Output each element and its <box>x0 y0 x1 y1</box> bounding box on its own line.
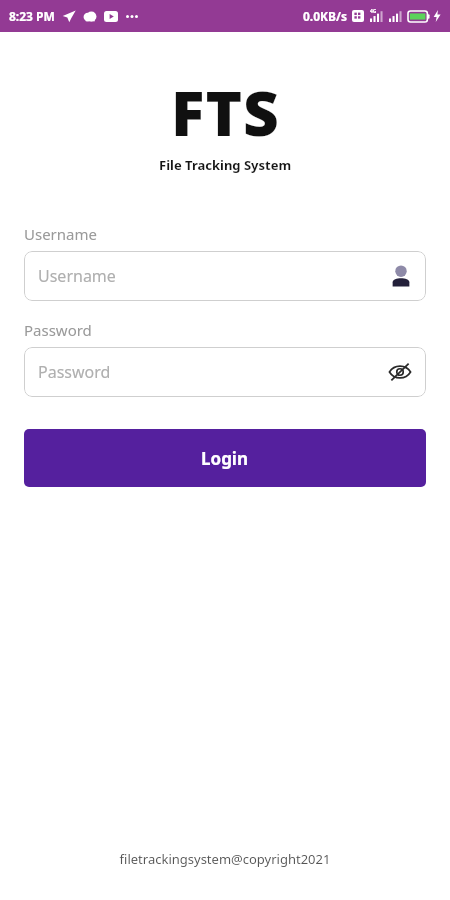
staticText: FTS <box>171 70 280 154</box>
staticText: 8:23 PM <box>9 8 55 24</box>
other: Show password <box>388 363 412 381</box>
button[interactable]: Password <box>24 347 426 397</box>
other: User <box>390 265 412 287</box>
staticText: 4G <box>370 8 377 15</box>
button[interactable]: Login <box>24 429 426 487</box>
staticText: Username <box>24 224 97 244</box>
staticText: 0.0KB/s <box>303 8 348 24</box>
staticText: filetrackingsystem@copyright2021 <box>0 850 450 868</box>
button[interactable]: Username <box>24 251 426 301</box>
staticText: File Tracking System <box>159 156 292 174</box>
staticText: Username <box>38 265 390 287</box>
staticText: Login <box>201 447 249 470</box>
staticText: Password <box>38 361 388 383</box>
staticText: Password <box>24 320 92 340</box>
